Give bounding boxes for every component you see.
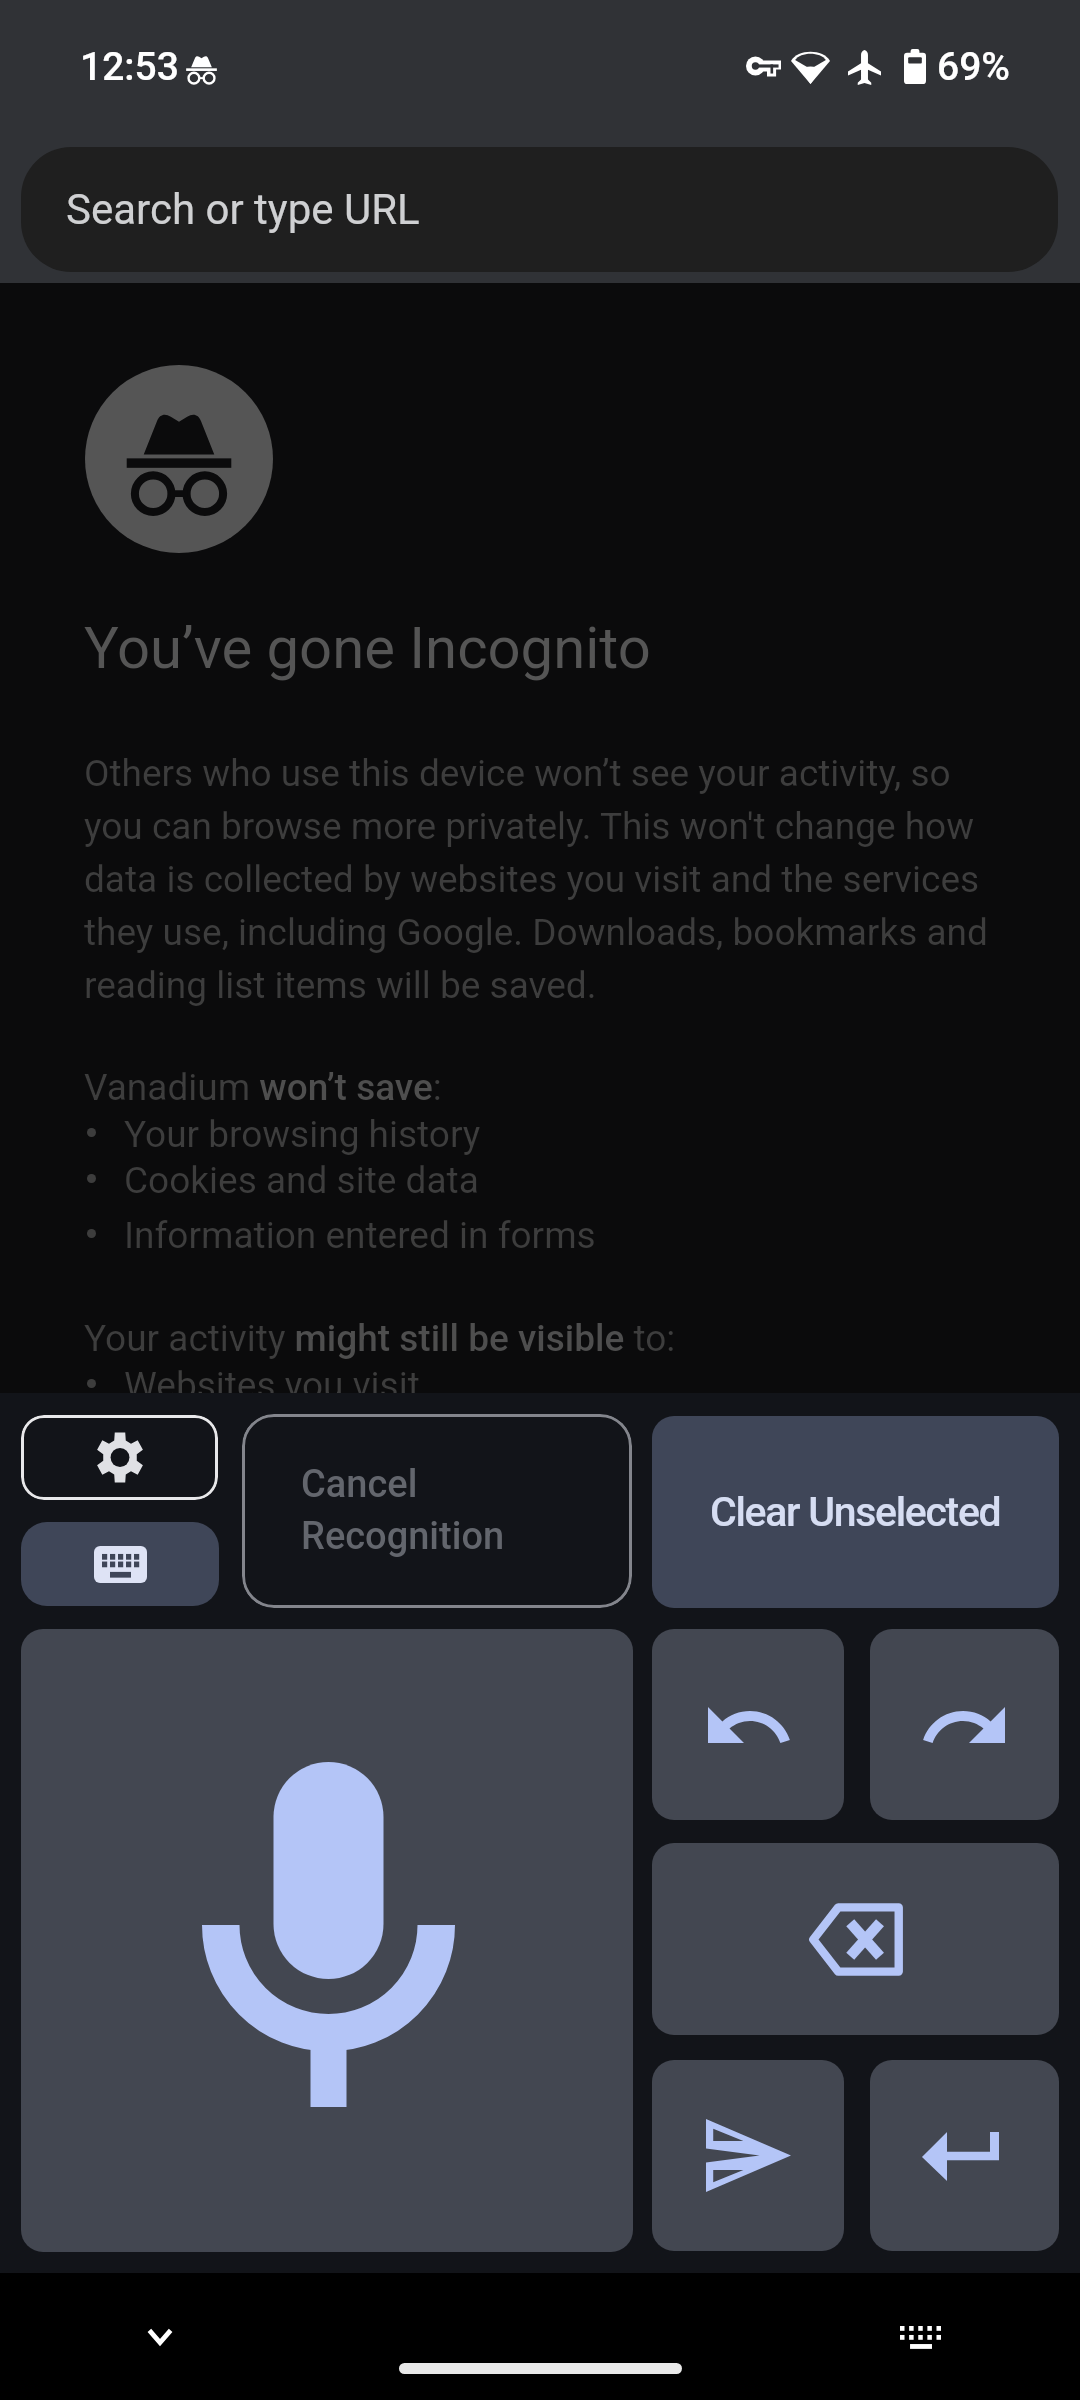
button[interactable]: Settings (21, 1415, 218, 1500)
staticText: Clear Unselected (710, 1488, 1001, 1536)
button[interactable]: Send (652, 2060, 844, 2251)
staticText: Your activity might still be visible to: (84, 1317, 676, 1360)
staticText: Information entered in forms (124, 1214, 596, 1257)
staticText: Cancel Recognition (301, 1462, 505, 1558)
staticText: Cookies and site data (124, 1159, 479, 1202)
button[interactable]: Switch input method (870, 2287, 970, 2387)
button[interactable]: Search or type URL (21, 147, 1058, 272)
staticText: Vanadium won’t save: (84, 1066, 442, 1109)
button[interactable]: Microphone (21, 1629, 633, 2252)
staticText: 12:53 (80, 44, 179, 90)
button[interactable]: Clear Unselected (652, 1416, 1059, 1608)
button[interactable]: Switch keyboard (21, 1522, 219, 1606)
button[interactable]: Undo (652, 1629, 844, 1820)
staticText: Your browsing history (124, 1113, 481, 1156)
staticText: You’ve gone Incognito (84, 614, 651, 682)
staticText: 69% (937, 44, 1011, 90)
button[interactable]: Backspace (652, 1843, 1059, 2035)
button[interactable]: Hide keyboard (110, 2286, 210, 2386)
button[interactable]: Cancel Recognition (242, 1414, 632, 1608)
staticText: Search or type URL (66, 185, 420, 234)
staticText: Others who use this device won’t see you… (84, 752, 1009, 1007)
staticText: Websites you visit (124, 1364, 420, 1407)
button[interactable]: Enter (870, 2060, 1059, 2251)
button[interactable]: Redo (870, 1629, 1059, 1820)
